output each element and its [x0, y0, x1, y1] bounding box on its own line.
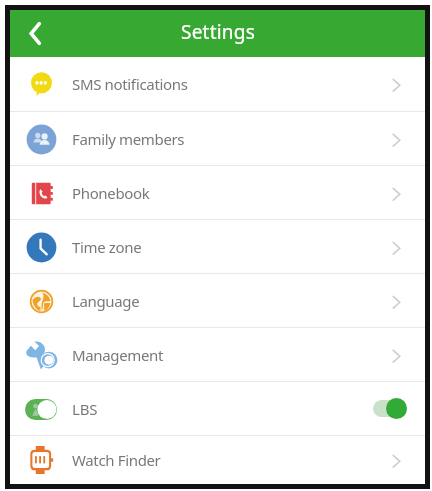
staticText: Time zone [72, 237, 142, 257]
button[interactable]: Language [10, 274, 425, 327]
button[interactable]: LBS toggle [373, 398, 407, 419]
button[interactable]: Time zone [10, 220, 425, 273]
staticText: Watch Finder [72, 450, 161, 470]
staticText: SMS notifications [72, 74, 188, 94]
button[interactable]: LBS [10, 382, 425, 435]
staticText: Phonebook [72, 183, 150, 203]
staticText: LBS [72, 399, 98, 419]
button[interactable]: Watch Finder [10, 436, 425, 484]
staticText: Language [72, 291, 140, 311]
staticText: Settings [181, 19, 255, 45]
button[interactable]: Family members [10, 112, 425, 165]
button[interactable]: Management [10, 328, 425, 381]
button[interactable]: SMS notifications [10, 57, 425, 111]
staticText: Management [72, 345, 164, 365]
button[interactable]: Back [10, 10, 60, 57]
staticText: Family members [72, 129, 185, 149]
button[interactable]: Phonebook [10, 166, 425, 219]
